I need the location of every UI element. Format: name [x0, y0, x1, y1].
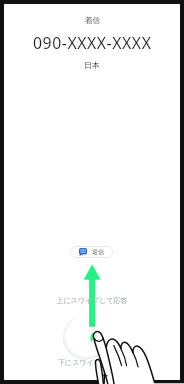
button[interactable]: 返信 [70, 246, 113, 258]
staticText: 着信 [85, 16, 100, 25]
staticText: 090-XXXX-XXXX [33, 32, 152, 54]
staticText: 下にスワイプ [58, 358, 101, 367]
staticText: 日本 [84, 60, 100, 70]
staticText: 上にスワイプして応答 [56, 296, 128, 305]
staticText: 返信 [92, 248, 104, 256]
